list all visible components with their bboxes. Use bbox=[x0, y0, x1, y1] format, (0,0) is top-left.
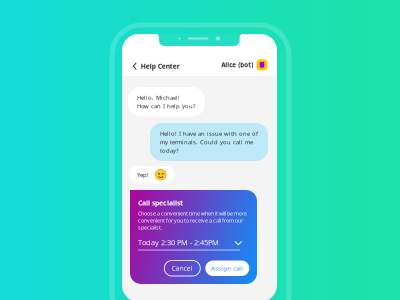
staticText: Hello, Michael! bbox=[137, 93, 180, 101]
staticText: today? bbox=[160, 146, 179, 154]
staticText: my terminals. Could you call me bbox=[160, 138, 253, 146]
staticText: convenient for you to receive a call fro… bbox=[138, 217, 243, 224]
staticText: Choose a convenient time when it will be… bbox=[138, 210, 247, 217]
staticText: specialist. bbox=[138, 224, 162, 231]
staticText: Help Center bbox=[141, 62, 180, 71]
staticText: Call specialist bbox=[138, 198, 183, 207]
staticText: Alice (bot) bbox=[221, 60, 253, 69]
button[interactable]: Today 2:30 PM - 2:45PM bbox=[138, 237, 248, 251]
staticText: Yep! bbox=[137, 171, 149, 179]
staticText: Cancel bbox=[172, 264, 193, 273]
staticText: Hello! I have an issue with one of bbox=[160, 129, 258, 137]
staticText: Today 2:30 PM - 2:45PM bbox=[138, 237, 219, 247]
button[interactable]: Assign call bbox=[205, 260, 249, 276]
button[interactable]: Help Center bbox=[125, 55, 188, 78]
button[interactable]: Alice (bot) bbox=[213, 53, 275, 76]
button[interactable]: Cancel bbox=[164, 260, 200, 276]
staticText: Assign call bbox=[211, 264, 243, 272]
staticText: How can I help you? bbox=[137, 102, 196, 110]
